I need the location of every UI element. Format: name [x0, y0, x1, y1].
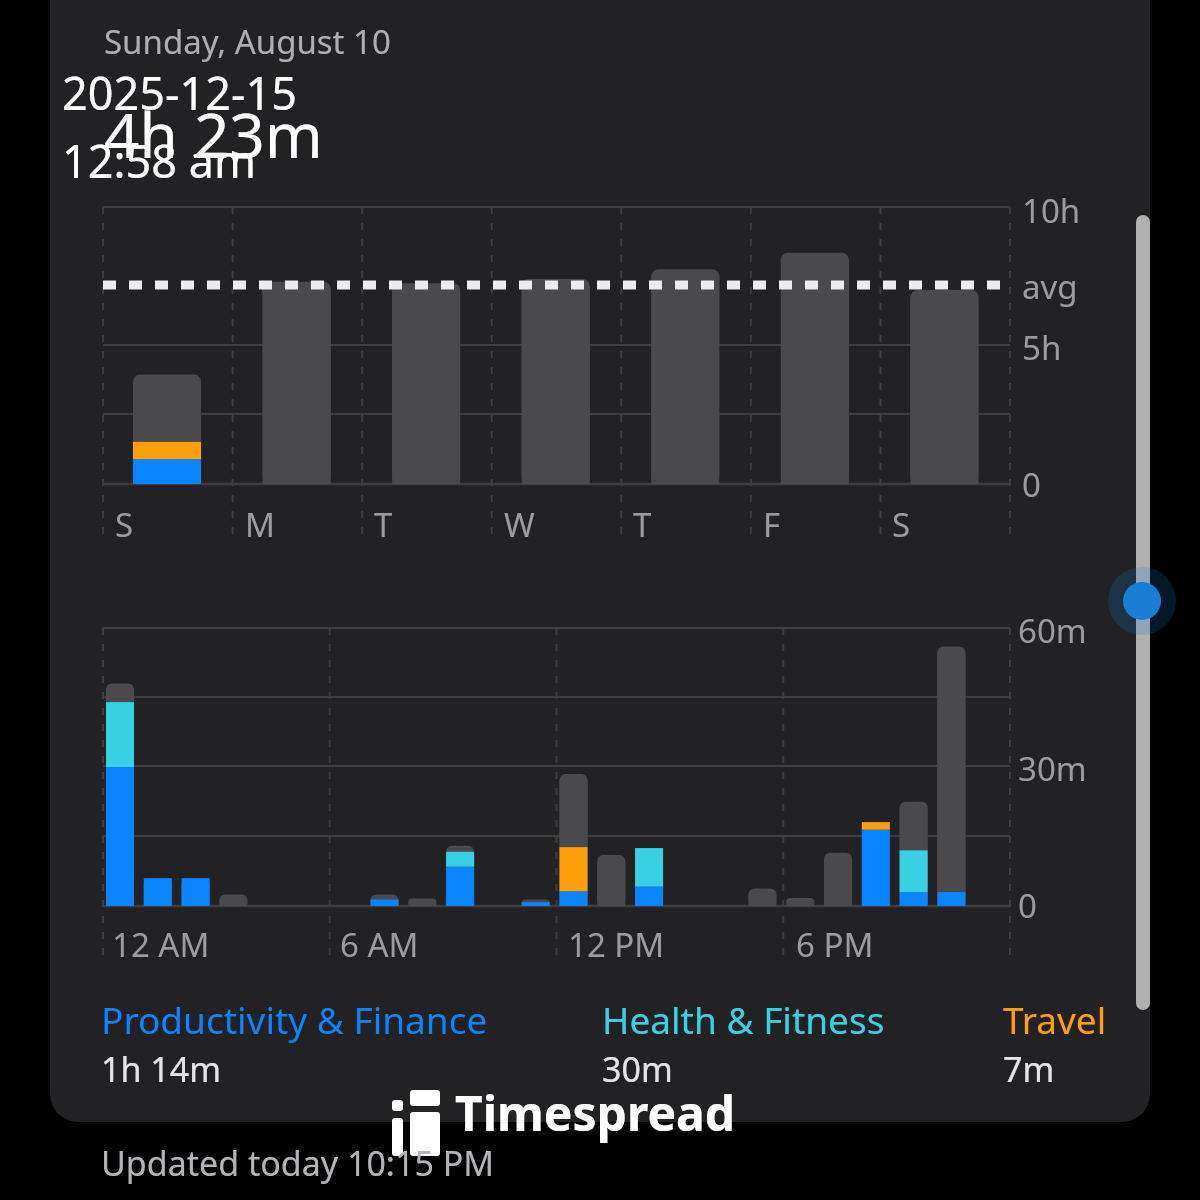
- staticText: 60m: [1018, 608, 1087, 653]
- staticText: W: [504, 502, 535, 547]
- button[interactable]: Scroll position indicator: [1110, 560, 1190, 640]
- staticText: 6 AM: [340, 922, 419, 967]
- staticText: 30m: [602, 1046, 673, 1092]
- staticText: 6 PM: [796, 922, 874, 967]
- button[interactable]: Travel: [1003, 994, 1107, 1044]
- staticText: S: [892, 502, 911, 547]
- staticText: avg: [1022, 264, 1078, 309]
- staticText: 5h: [1022, 325, 1062, 370]
- button[interactable]: Productivity & Finance: [101, 994, 488, 1044]
- staticText: 1h 14m: [101, 1046, 221, 1092]
- staticText: 10h: [1022, 188, 1081, 233]
- staticText: T: [633, 502, 652, 547]
- staticText: 2025-12-15: [62, 62, 297, 123]
- staticText: 4h 23m: [104, 92, 323, 176]
- staticText: T: [374, 502, 393, 547]
- staticText: Updated today 10:15 PM: [101, 1140, 495, 1186]
- staticText: 12 AM: [112, 922, 210, 967]
- staticText: M: [245, 502, 275, 547]
- staticText: 12:58 am: [62, 130, 257, 191]
- staticText: 7m: [1003, 1046, 1055, 1092]
- button[interactable]: Health & Fitness: [602, 994, 885, 1044]
- staticText: Sunday, August 10: [104, 19, 391, 64]
- staticText: 12 PM: [568, 922, 665, 967]
- staticText: 0: [1018, 883, 1037, 928]
- staticText: 0: [1022, 462, 1041, 507]
- staticText: Timespread: [455, 1080, 736, 1145]
- staticText: F: [763, 502, 781, 547]
- staticText: 30m: [1018, 746, 1087, 791]
- button[interactable]: [50, 0, 1150, 1122]
- staticText: S: [115, 502, 134, 547]
